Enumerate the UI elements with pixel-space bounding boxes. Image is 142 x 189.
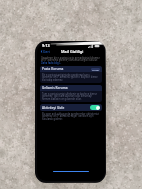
- staticText: Gelismis Koruma: [42, 86, 68, 90]
- staticText: Posta Koruma: [42, 67, 64, 71]
- button[interactable]: Back: [40, 49, 50, 54]
- button[interactable]: Gelismis Koruma: [40, 85, 102, 102]
- staticText: 10 GB: [92, 68, 99, 71]
- staticText: Mail Gizliligi: [61, 49, 84, 54]
- button[interactable]: Posta Koruma: [40, 66, 102, 83]
- other: Back: [40, 50, 43, 53]
- button[interactable]: Aktiviteyi Gizle: [40, 104, 102, 111]
- button[interactable]: Toggle: [90, 105, 100, 110]
- staticText: Bu ayar acik oldugunda gonderenler aktiv…: [42, 112, 100, 121]
- staticText: Gonderen bir e-postayi acip acmadiginizi…: [41, 56, 101, 65]
- staticText: Aktiviteyi Gizle: [42, 106, 65, 110]
- staticText: 9:13: [42, 43, 50, 48]
- staticText: Bir e-postayi actiginizda gonderen bunu …: [42, 73, 100, 82]
- staticText: Tum e-posta icerigi sifrelenir ve boylec…: [42, 92, 100, 101]
- staticText: Geri: [43, 49, 50, 54]
